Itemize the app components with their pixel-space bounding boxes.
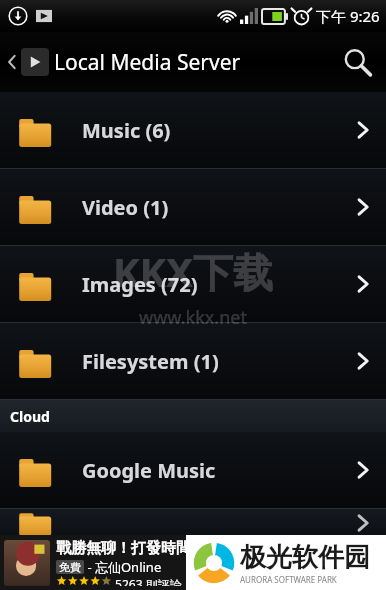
staticText: 下午 9:26 [316,6,380,26]
staticText: Cloud [10,407,50,426]
button[interactable]: Google Music [0,432,386,508]
staticText: Images (72) [82,271,198,298]
staticText: Video (1) [82,194,169,221]
staticText: 免費 [59,560,81,574]
button[interactable]: Search [328,32,386,92]
staticText: 戰勝無聊！打發時間 [56,539,191,558]
staticText: Filesystem (1) [82,348,219,375]
staticText: Local Media Server [54,48,241,77]
staticText: - 忘仙Online [84,558,162,576]
staticText: 5263 則評論 [112,576,182,586]
staticText: Music (6) [82,117,171,144]
staticText: www.kkx.net [139,305,247,330]
staticText: 极光软件园 [240,541,370,574]
button[interactable] [0,509,386,535]
button[interactable]: 戰勝無聊！打發時間 [0,535,386,590]
button[interactable]: Up [0,42,53,82]
staticText: KKX下载 [113,244,273,299]
button[interactable]: Filesystem (1) [0,323,386,399]
staticText: AURORA SOFTWARE PARK [240,574,337,585]
button[interactable]: Images (72) [0,246,386,322]
button[interactable]: Video (1) [0,169,386,245]
staticText: Google Music [82,457,216,484]
button[interactable]: Music (6) [0,92,386,168]
